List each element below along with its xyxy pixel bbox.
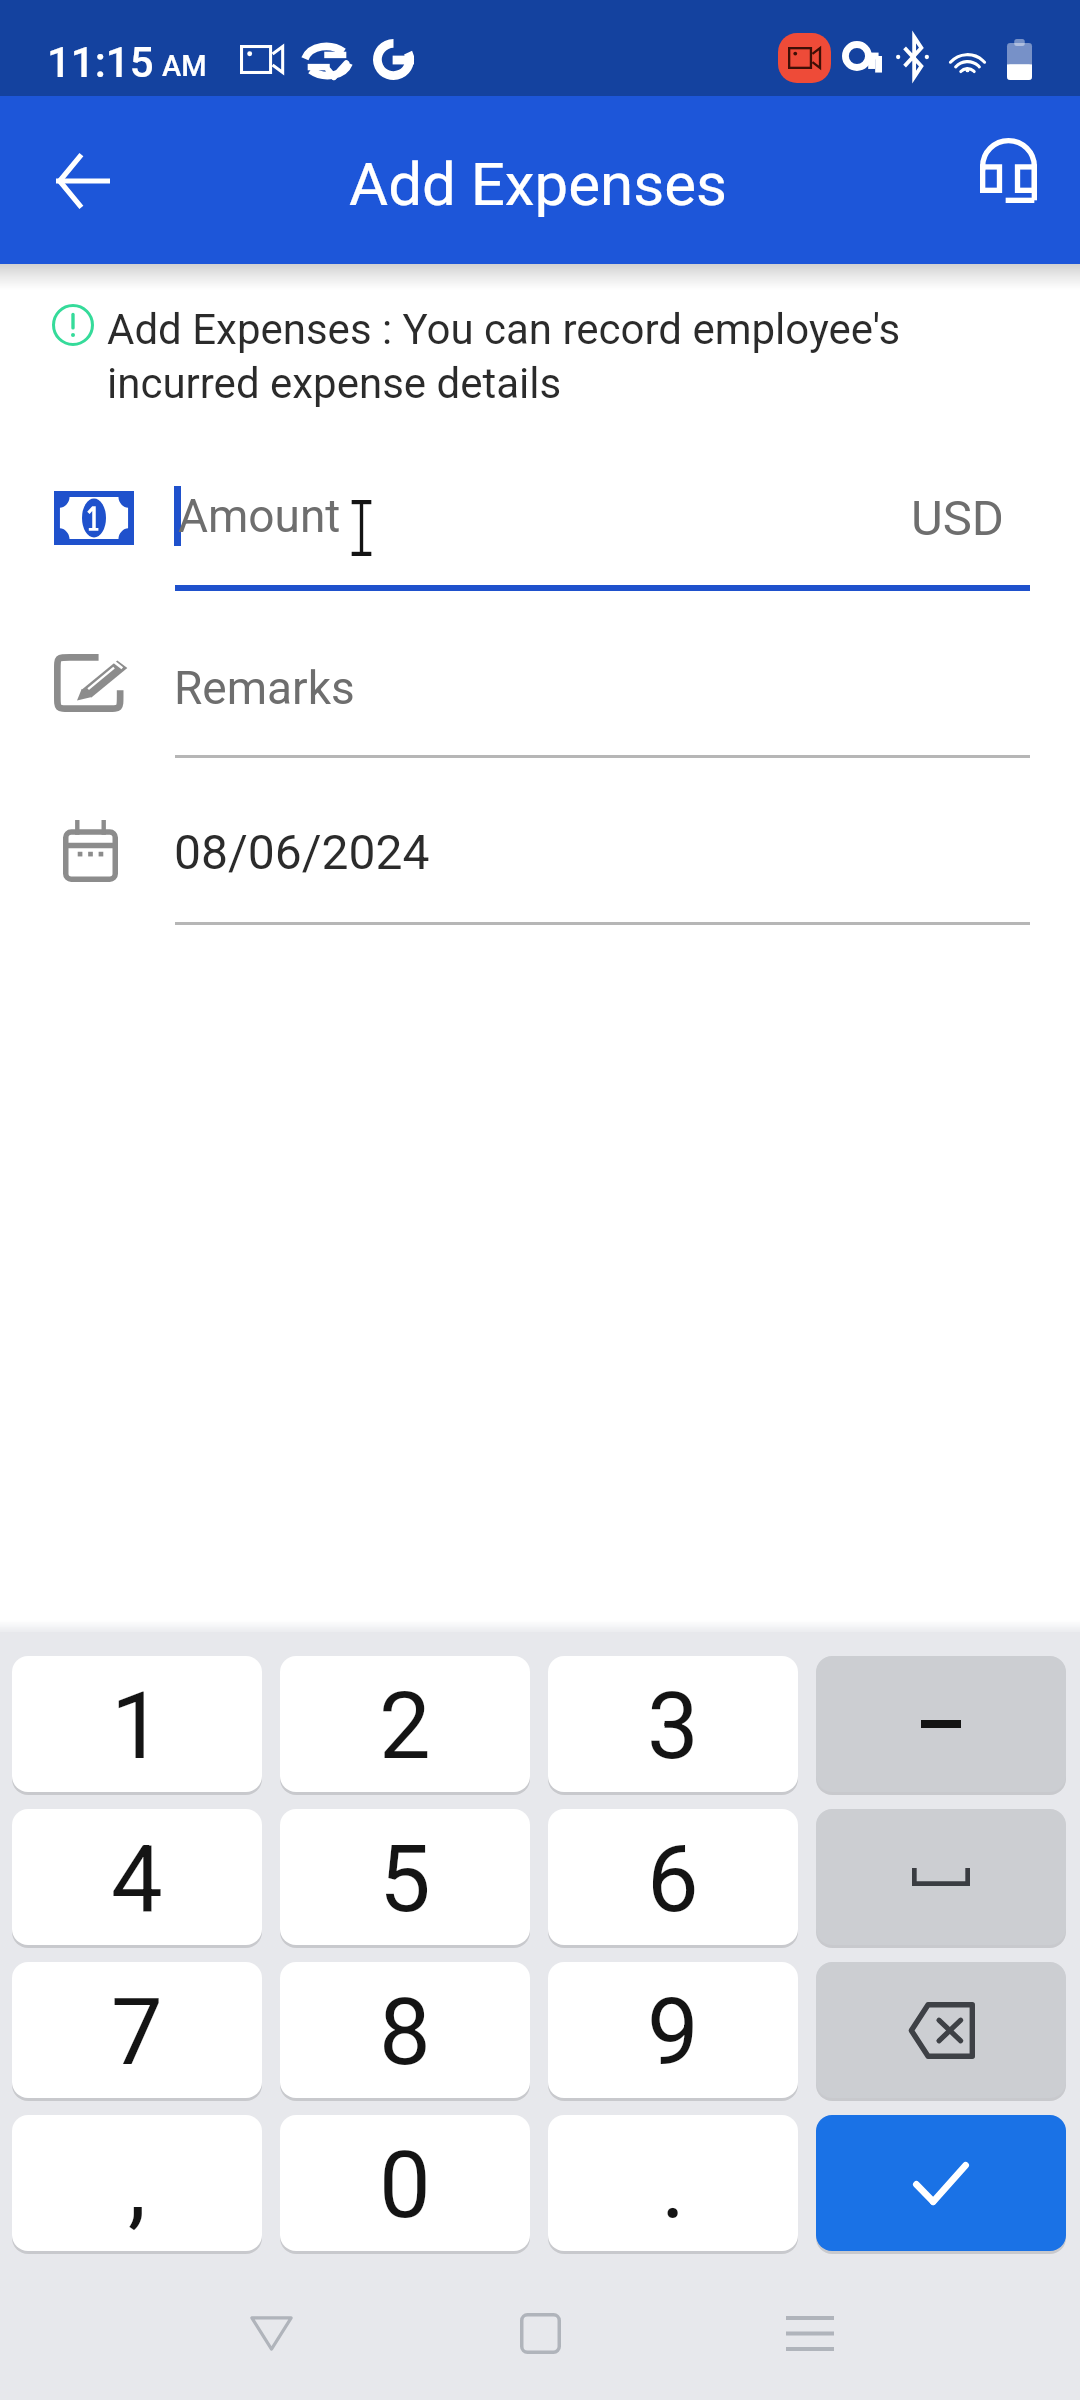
button[interactable]: 1 — [12, 1656, 262, 1792]
button[interactable]: Back — [216, 2278, 326, 2388]
button[interactable]: Minus — [816, 1656, 1066, 1792]
button[interactable]: Back — [35, 133, 131, 229]
button[interactable]: 4 — [12, 1809, 262, 1945]
staticText: . — [661, 2132, 686, 2240]
staticText: 0 — [379, 2132, 431, 2240]
button[interactable]: 3 — [548, 1656, 798, 1792]
button[interactable]: 9 — [548, 1962, 798, 2098]
staticText: 11:15 — [47, 38, 154, 87]
staticText: 9 — [647, 1979, 699, 2087]
staticText: Add Expenses : You can record employee's… — [107, 305, 901, 408]
staticText: Amount — [178, 489, 341, 543]
staticText: 3 — [647, 1673, 699, 1781]
staticText: 2 — [379, 1673, 431, 1781]
button[interactable]: Done — [816, 2115, 1066, 2251]
button[interactable]: Space — [816, 1809, 1066, 1945]
button[interactable]: 2 — [280, 1656, 530, 1792]
button[interactable]: Backspace — [816, 1962, 1066, 2098]
button[interactable]: 5 — [280, 1809, 530, 1945]
staticText: 4 — [111, 1826, 163, 1934]
staticText: 8 — [379, 1979, 431, 2087]
staticText: 5 — [379, 1826, 431, 1934]
button[interactable]: 6 — [548, 1809, 798, 1945]
staticText: 1 — [111, 1673, 163, 1781]
button[interactable]: . — [548, 2115, 798, 2251]
button[interactable]: , — [12, 2115, 262, 2251]
staticText: 6 — [647, 1826, 699, 1934]
button[interactable]: 0 — [280, 2115, 530, 2251]
button[interactable]: Customer support — [960, 122, 1056, 218]
staticText: , — [128, 2132, 147, 2240]
staticText: AM — [162, 49, 207, 83]
staticText: USD — [911, 490, 1005, 547]
staticText: Remarks — [174, 661, 355, 715]
button[interactable]: Recent apps — [755, 2278, 865, 2388]
button[interactable]: 8 — [280, 1962, 530, 2098]
staticText: 7 — [111, 1979, 163, 2087]
button[interactable]: Home — [485, 2278, 595, 2388]
button[interactable]: 7 — [12, 1962, 262, 2098]
staticText: Add Expenses — [349, 149, 727, 219]
staticText: 08/06/2024 — [174, 824, 430, 880]
